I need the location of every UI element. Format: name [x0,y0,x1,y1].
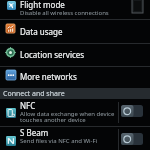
staticText: Connect and share [3,89,65,99]
staticText: Allow data exchange when device [20,110,115,118]
staticText: Location services [20,49,85,60]
button[interactable]: More networks [0,67,150,88]
staticText: S Beam [20,127,49,138]
staticText: More networks [20,71,77,82]
button[interactable]: Flight mode [0,0,150,19]
staticText: Disable all wireless connections [20,9,109,17]
staticText: Data usage [20,26,63,37]
button[interactable]: Location services [0,44,150,66]
button[interactable]: NFC [0,100,150,126]
staticText: Flight mode [20,0,65,10]
button[interactable]: Data usage [0,20,150,43]
staticText: touches another device [20,116,86,124]
button[interactable]: S Beam [0,127,150,150]
staticText: NFC [20,100,36,111]
staticText: Send files via NFC and Wi-Fi [20,137,98,145]
